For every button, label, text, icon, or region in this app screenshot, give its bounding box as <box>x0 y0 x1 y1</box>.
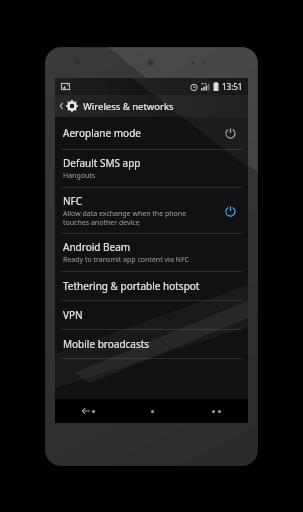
button[interactable]: Recent apps <box>184 399 248 423</box>
staticText: Android Beam <box>63 240 131 254</box>
staticText: 13:51 <box>222 81 243 92</box>
staticText: Mobile broadcasts <box>63 337 150 351</box>
staticText: NFC <box>63 194 83 208</box>
button[interactable]: Home <box>120 399 184 423</box>
staticText: VPN <box>63 308 83 322</box>
button[interactable]: Android Beam <box>55 234 248 271</box>
button[interactable]: NFC toggle <box>220 201 240 221</box>
button[interactable]: Back <box>55 399 120 423</box>
button[interactable]: VPN <box>55 301 248 329</box>
button[interactable]: NFC <box>55 188 248 233</box>
button[interactable]: Tethering & portable hotspot <box>55 272 248 300</box>
staticText: Wireless & networks <box>83 100 174 113</box>
staticText: Default SMS app <box>63 156 141 170</box>
button[interactable]: Default SMS app <box>55 150 248 187</box>
button[interactable]: Mobile broadcasts <box>55 330 248 358</box>
staticText: Tethering & portable hotspot <box>63 279 200 293</box>
button[interactable]: Aeroplane mode toggle <box>220 123 240 143</box>
staticText: Hangouts <box>63 171 96 181</box>
button[interactable]: Navigate up <box>55 95 248 117</box>
other: Navigate up <box>59 101 64 111</box>
button[interactable]: Aeroplane mode <box>55 117 248 149</box>
staticText: Aeroplane mode <box>63 126 141 140</box>
staticText: Ready to transmit app content via NFC <box>63 255 189 265</box>
staticText: Allow data exchange when the phone touch… <box>63 209 187 227</box>
